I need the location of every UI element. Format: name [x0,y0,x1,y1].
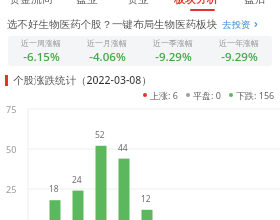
staticText: 盘业 [76,0,98,5]
staticText: 板块分析 [174,0,218,5]
staticText: 资金流向 [9,0,53,5]
staticText: 52 [95,129,105,141]
staticText: 24 [72,174,82,186]
staticText: 个股涨跌统计（2022-03-08） [13,73,152,87]
staticText: -4.06% [89,49,126,65]
button[interactable]: 资金流向 [0,0,62,5]
button[interactable]: 平盘: 0 [186,89,221,101]
button[interactable]: 上涨: 6 [143,89,178,101]
staticText: 50 [6,143,17,155]
button[interactable]: 板块分析 [163,0,229,5]
staticText: 近一月涨幅 [87,38,127,48]
staticText: 44 [118,142,128,154]
staticText: 资业 [127,0,149,5]
button[interactable]: 选不好生物医药个股？一键布局生物医药板块 [0,13,280,36]
staticText: 下跌: 156 [236,89,275,101]
staticText: 18 [49,183,59,195]
staticText: 75 [6,103,17,115]
staticText: 去投资 [222,19,251,31]
button[interactable]: 近一周涨幅 [8,36,272,66]
staticText: -9.29% [221,49,258,65]
other: 去投资 [253,20,259,29]
staticText: 近一年涨幅 [219,38,259,48]
staticText: 盘后 [244,0,266,5]
staticText: 25 [6,183,17,195]
staticText: 近一季涨幅 [153,38,193,48]
staticText: 12 [141,193,151,205]
button[interactable]: 盘后 [229,0,280,5]
staticText: -9.29% [155,49,192,65]
staticText: 近一周涨幅 [21,38,61,48]
button[interactable]: 资业 [112,0,163,5]
staticText: 选不好生物医药个股？一键布局生物医药板块 [7,18,217,31]
button[interactable]: 盘业 [62,0,112,5]
staticText: 上涨: 6 [150,89,178,101]
staticText: 平盘: 0 [193,89,221,101]
staticText: -6.15% [23,49,60,65]
button[interactable]: 下跌: 156 [229,89,275,101]
